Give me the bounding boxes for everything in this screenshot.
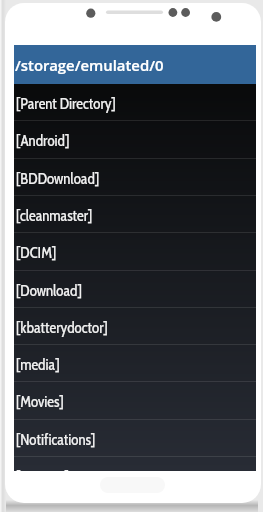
- staticText: [Pictures]: [16, 467, 70, 471]
- button[interactable]: [cleanmaster]: [14, 196, 256, 233]
- staticText: [Download]: [16, 281, 82, 299]
- staticText: [Parent Directory]: [16, 94, 116, 112]
- staticText: [Android]: [16, 131, 70, 149]
- button[interactable]: [kbatterydoctor]: [14, 308, 256, 345]
- staticText: /storage/emulated/0: [15, 55, 164, 75]
- button[interactable]: [Android]: [14, 121, 256, 158]
- staticText: [media]: [16, 355, 60, 373]
- button[interactable]: /storage/emulated/0: [14, 45, 256, 84]
- staticText: [cleanmaster]: [16, 206, 93, 224]
- staticText: [Movies]: [16, 392, 64, 410]
- button[interactable]: [DCIM]: [14, 233, 256, 270]
- button[interactable]: [Movies]: [14, 382, 256, 419]
- staticText: [DCIM]: [16, 243, 57, 261]
- button[interactable]: [media]: [14, 345, 256, 382]
- staticText: [kbatterydoctor]: [16, 318, 108, 336]
- staticText: [BDDownload]: [16, 169, 100, 187]
- button[interactable]: [Pictures]: [14, 457, 256, 471]
- button[interactable]: [BDDownload]: [14, 159, 256, 196]
- button[interactable]: [Notifications]: [14, 420, 256, 457]
- staticText: [Notifications]: [16, 430, 96, 448]
- button[interactable]: [Parent Directory]: [14, 84, 256, 121]
- button[interactable]: [Download]: [14, 271, 256, 308]
